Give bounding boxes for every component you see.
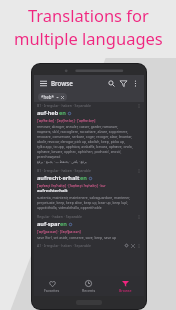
staticText: save (for), set aside, conserve, save, k… xyxy=(37,235,117,240)
button[interactable]: Search xyxy=(105,77,117,89)
staticText: Recents xyxy=(82,288,96,293)
button[interactable]: More options xyxy=(129,77,141,89)
staticText: abolir, revocar, derogar, pick up, aboli… xyxy=(37,139,125,144)
button[interactable]: B1 · Irregular · haben · Separable xyxy=(34,102,144,165)
staticText: aufrecht·erhalt xyxy=(37,174,80,182)
staticText: Regular · haben · Separable xyxy=(37,214,83,219)
staticText: auf·heb xyxy=(37,109,59,117)
staticText: upprätthålla, vidmakthålla, opprettholde xyxy=(37,205,102,210)
staticText: perpetuate, keep, keep alive, keep up, b… xyxy=(37,200,129,205)
staticText: يرفع · يلغي · يحتفظ ب · يجمع · يرفع xyxy=(37,159,87,164)
button[interactable]: *heb* xyxy=(38,93,67,101)
button[interactable]: Regular · haben · Separable xyxy=(34,213,144,241)
staticText: multiple languages xyxy=(14,27,163,49)
staticText: tylko app, to upp, upphäva, avskaffa, be… xyxy=(37,144,133,149)
staticText: Browse xyxy=(119,288,132,293)
staticText: [ˈaʊ̯fˌʃpaːʁən] · [ʔaʊ̯fʃpaːʁən] xyxy=(37,229,81,234)
staticText: Translations for xyxy=(28,4,149,26)
staticText: aufrechterhalt xyxy=(37,188,68,194)
staticText: remover, abroger, annuler, casser, garde… xyxy=(37,124,118,129)
button[interactable]: Recents xyxy=(70,276,107,296)
staticText: sustenta, maintenir, maintenere, salvagu… xyxy=(37,195,131,200)
staticText: Browse xyxy=(51,79,73,87)
button[interactable]: Browse xyxy=(107,276,144,296)
button[interactable]: Favorites xyxy=(34,276,70,296)
staticText: auf·spar xyxy=(37,220,60,228)
staticText: [ˈaʊ̯fheːbn̩] · [ˈaʊ̯fˌheːbn̩] · [ˈaʊ̯fh… xyxy=(37,118,96,123)
staticText: [ˈaʊ̯fʁɛçt ʔɛɐ̯ˈhaltn̩] · [ʔaʊ̯fʁɛçt ʔɛɐ… xyxy=(37,183,106,188)
staticText: en xyxy=(80,174,87,182)
staticText: revocare, conservare, serbare, coger, re… xyxy=(37,134,132,139)
staticText: A1 · Irregular · haben · Separable xyxy=(37,243,91,248)
staticText: en xyxy=(59,109,66,117)
button[interactable]: Open navigation menu xyxy=(37,77,49,89)
staticText: en xyxy=(60,220,67,228)
staticText: Favorites xyxy=(44,288,60,293)
staticText: поднять, sb'd, raccogliere, raccattare, … xyxy=(37,129,129,134)
button[interactable]: Filter xyxy=(117,77,129,89)
staticText: ophæve, bevare, opphec, ophichen, podnos… xyxy=(37,149,122,154)
button[interactable]: B1 · Irregular · haben · Separable xyxy=(34,167,144,211)
staticText: B1 · Irregular · haben · Separable xyxy=(37,103,91,108)
staticText: *heb* xyxy=(41,94,54,100)
staticText: B1 · Irregular · haben · Separable xyxy=(37,168,91,173)
staticText: przechowywać xyxy=(37,154,61,159)
